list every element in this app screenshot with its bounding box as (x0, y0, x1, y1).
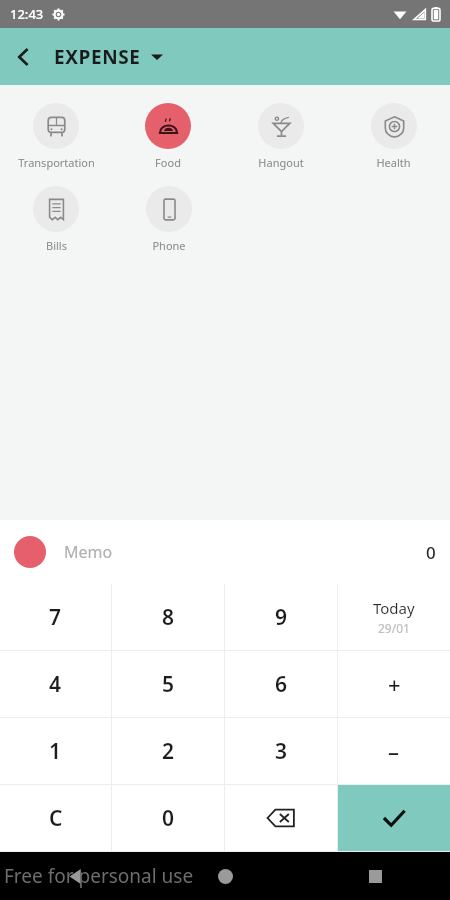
button[interactable]: Bills (0, 184, 112, 255)
button[interactable]: Transportation (0, 101, 112, 172)
staticText: Food (155, 155, 181, 170)
staticText: 7 (49, 603, 62, 632)
staticText: 1 (49, 737, 62, 766)
button[interactable]: 7 (0, 584, 111, 650)
button[interactable]: 5 (112, 651, 224, 717)
button[interactable]: 3 (225, 718, 337, 784)
button[interactable]: 6 (225, 651, 337, 717)
staticText: Phone (152, 238, 186, 253)
button[interactable]: – (338, 718, 450, 784)
button[interactable]: EXPENSE (54, 44, 163, 70)
button[interactable]: Health (337, 101, 450, 172)
button[interactable]: 9 (225, 584, 337, 650)
button[interactable]: Confirm (338, 785, 450, 851)
staticText: 9 (275, 603, 288, 632)
staticText: 29/01 (378, 620, 410, 636)
button[interactable]: Back (0, 852, 150, 900)
button[interactable]: Backspace (225, 785, 337, 851)
button[interactable]: C (0, 785, 111, 851)
staticText: 5 (162, 670, 175, 699)
staticText: 0 (162, 804, 175, 833)
staticText: Transportation (18, 155, 95, 170)
staticText: 8 (162, 603, 175, 632)
staticText: 2 (162, 737, 175, 766)
button[interactable]: Home (150, 852, 300, 900)
button[interactable]: Food (112, 101, 224, 172)
staticText: Free for personal use (4, 863, 194, 889)
button[interactable]: + (338, 651, 450, 717)
button[interactable]: 4 (0, 651, 111, 717)
button[interactable]: 2 (112, 718, 224, 784)
staticText: Memo (64, 541, 113, 563)
button[interactable]: Hangout (224, 101, 337, 172)
staticText: C (49, 804, 63, 833)
staticText: EXPENSE (54, 44, 141, 70)
button[interactable]: Back (0, 33, 48, 81)
staticText: Bills (46, 238, 67, 253)
button[interactable]: Recents (300, 852, 450, 900)
staticText: 6 (275, 670, 288, 699)
staticText: 12:43 (10, 5, 44, 23)
button[interactable]: Today (338, 584, 450, 650)
staticText: Health (376, 155, 411, 170)
staticText: 3 (275, 737, 288, 766)
button[interactable]: 0 (112, 785, 224, 851)
staticText: Today (373, 598, 415, 618)
button[interactable]: 1 (0, 718, 111, 784)
staticText: Hangout (258, 155, 304, 170)
button[interactable]: 8 (112, 584, 224, 650)
staticText: – (388, 736, 400, 766)
staticText: + (388, 669, 401, 699)
staticText: 4 (49, 670, 62, 699)
staticText: 0 (426, 541, 436, 564)
button[interactable]: Phone (112, 184, 225, 255)
button[interactable]: Memo (0, 520, 450, 584)
